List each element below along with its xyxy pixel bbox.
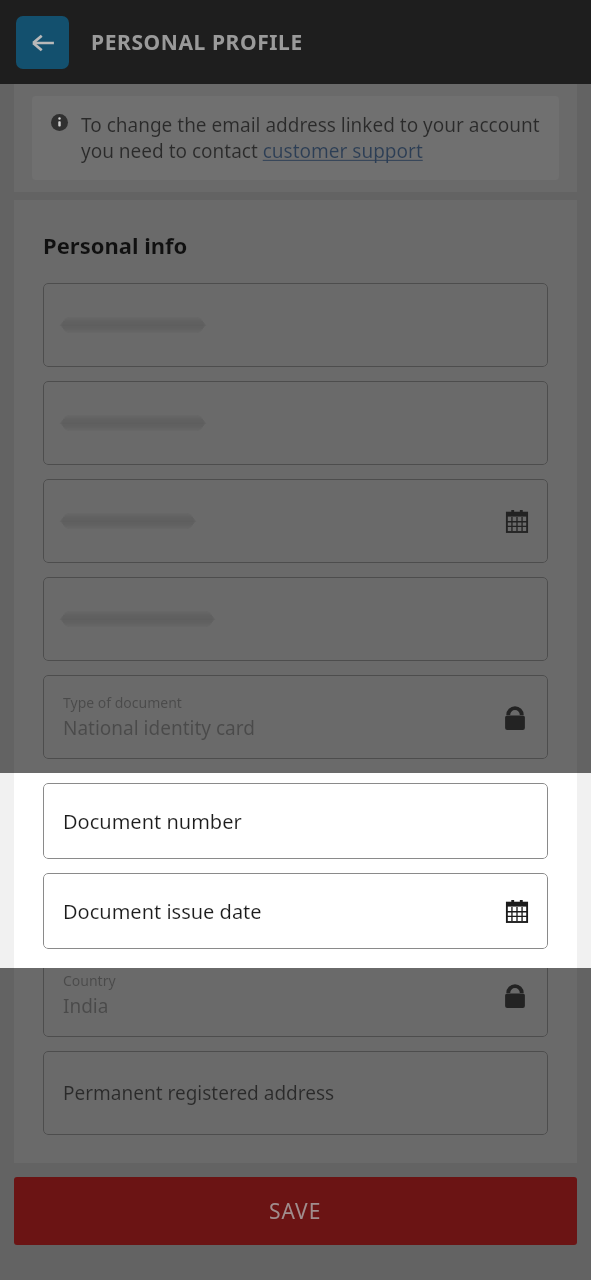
- staticText: Personal info: [43, 230, 188, 260]
- other: Pick date: [506, 510, 528, 532]
- staticText: India: [63, 993, 109, 1019]
- other: Pick date: [506, 900, 528, 922]
- button[interactable]: Pick date: [43, 479, 548, 563]
- button[interactable]: Type of document: [43, 675, 548, 759]
- button[interactable]: [43, 577, 548, 661]
- button[interactable]: [43, 381, 548, 465]
- button[interactable]: Document number: [43, 783, 548, 859]
- staticText: Type of document: [63, 693, 182, 712]
- staticText: To change the email address linked to yo…: [81, 112, 541, 164]
- staticText: SAVE: [269, 1197, 322, 1226]
- other: Locked: [502, 982, 528, 1008]
- staticText: Permanent registered address: [63, 1080, 335, 1106]
- staticText: Document issue date: [63, 898, 262, 925]
- button[interactable]: [43, 283, 548, 367]
- button[interactable]: SAVE: [14, 1177, 577, 1245]
- button[interactable]: To change the email address linked to yo…: [32, 96, 559, 180]
- button[interactable]: Permanent registered address: [43, 1051, 548, 1135]
- staticText: Country: [63, 971, 116, 990]
- button[interactable]: Country: [43, 953, 548, 1037]
- button[interactable]: Document issue date: [43, 873, 548, 949]
- other: Locked: [502, 704, 528, 730]
- staticText: PERSONAL PROFILE: [91, 28, 303, 57]
- button[interactable]: Back: [16, 16, 69, 69]
- staticText: Document number: [63, 808, 242, 835]
- staticText: National identity card: [63, 715, 255, 741]
